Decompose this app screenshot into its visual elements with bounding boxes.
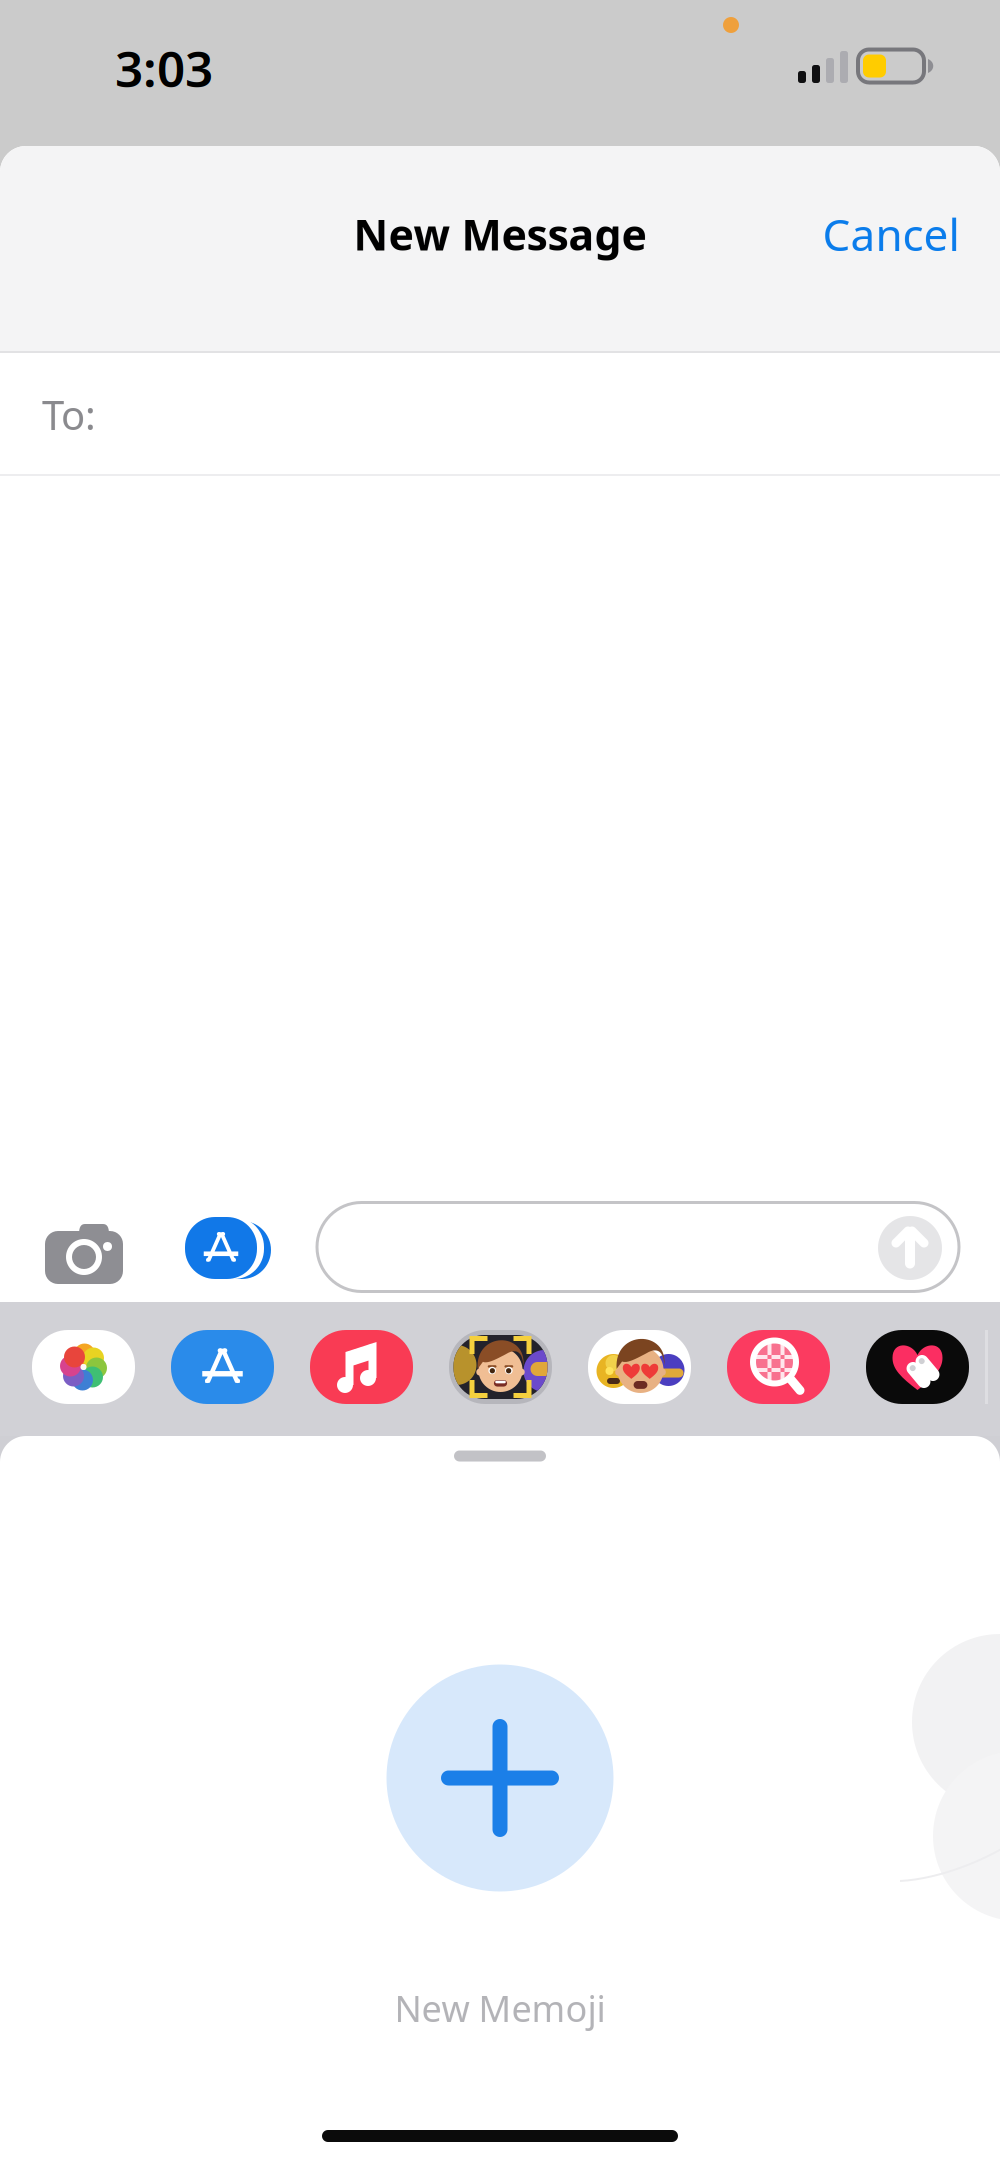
button[interactable]: Camera: [45, 1219, 125, 1281]
button[interactable]: Images: [727, 1330, 830, 1404]
button[interactable]: Music: [310, 1330, 413, 1404]
button[interactable]: To:: [0, 353, 1000, 476]
button[interactable]: Photos: [32, 1330, 135, 1404]
staticText: To:: [42, 388, 96, 441]
button[interactable]: Digital Touch: [866, 1330, 969, 1404]
staticText: New Memoji: [394, 1984, 605, 2032]
button[interactable]: Send: [874, 1212, 946, 1284]
button[interactable]: New Memoji: [350, 1620, 650, 2030]
button[interactable]: Apps: [185, 1215, 273, 1281]
staticText: 3:03: [115, 35, 213, 101]
button[interactable]: Memoji: [449, 1330, 552, 1404]
button[interactable]: Stickers: [588, 1330, 691, 1404]
staticText: Cancel: [822, 205, 959, 263]
button[interactable]: App Store: [171, 1330, 274, 1404]
staticText: New Message: [353, 206, 646, 262]
button[interactable]: Cancel: [791, 188, 991, 280]
